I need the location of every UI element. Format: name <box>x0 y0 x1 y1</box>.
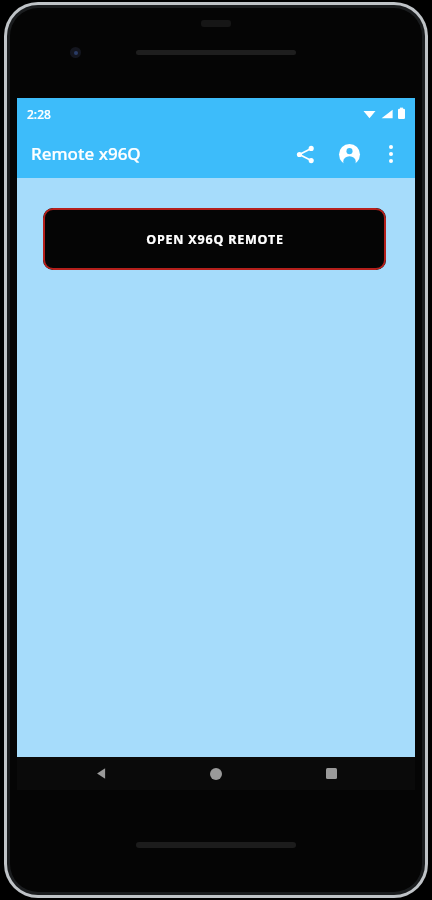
staticText: Remote x96Q <box>31 142 141 165</box>
button[interactable]: Account <box>327 132 371 176</box>
staticText: OPEN X96Q REMOTE <box>146 231 284 248</box>
button[interactable]: Back <box>70 757 132 790</box>
button[interactable]: Share <box>283 132 327 176</box>
button[interactable]: OPEN X96Q REMOTE <box>43 208 386 270</box>
button[interactable]: More options <box>371 134 411 174</box>
button[interactable]: Recent apps <box>300 757 362 790</box>
staticText: 2:28 <box>27 106 51 122</box>
button[interactable]: Home <box>185 757 247 790</box>
